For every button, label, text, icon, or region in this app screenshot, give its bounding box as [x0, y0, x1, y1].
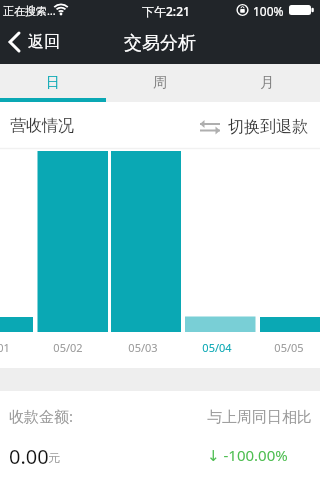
staticText: 05/03	[128, 340, 158, 355]
staticText: 元	[48, 450, 60, 465]
staticText: ↓ -100.00%	[207, 445, 288, 465]
staticText: 下午2:21	[142, 3, 190, 19]
staticText: 05/02	[53, 340, 83, 355]
staticText: 正在搜索…	[3, 3, 56, 18]
staticText: 01	[0, 340, 10, 355]
button[interactable]: 月	[213, 64, 320, 102]
staticText: 交易分析	[124, 32, 196, 55]
staticText: 日	[46, 74, 60, 92]
button[interactable]: 日	[0, 64, 106, 102]
staticText: 周	[153, 74, 167, 92]
button[interactable]: 返回	[6, 28, 60, 56]
button[interactable]: 周	[106, 64, 213, 102]
staticText: 05/05	[274, 340, 304, 355]
staticText: 收款金额:	[9, 406, 74, 426]
staticText: 05/04	[202, 340, 232, 355]
button[interactable]: 05/04	[182, 340, 252, 355]
staticText: 与上周同日相比	[207, 408, 312, 427]
staticText: 切换到退款	[228, 117, 308, 137]
button[interactable]: 切换到退款	[197, 111, 308, 143]
staticText: 返回	[28, 32, 60, 52]
staticText: 0.00	[9, 443, 49, 470]
staticText: 100%	[253, 3, 284, 19]
staticText: 营收情况	[10, 116, 74, 136]
staticText: 月	[260, 74, 274, 92]
